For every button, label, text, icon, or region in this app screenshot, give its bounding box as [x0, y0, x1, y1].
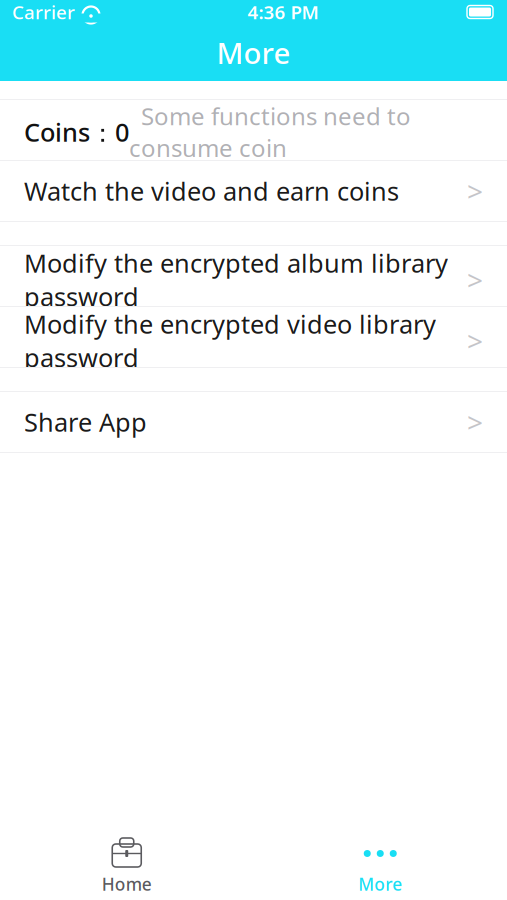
button[interactable]: Watch the video and earn coins [0, 161, 507, 222]
staticText: 4:36 PM [247, 0, 318, 24]
staticText: More [216, 33, 290, 72]
staticText: Modify the encrypted video library passw… [24, 307, 436, 374]
staticText: Watch the video and earn coins [24, 174, 399, 208]
staticText: Coins： [24, 115, 115, 149]
staticText: > [467, 403, 483, 441]
staticText: Modify the encrypted album library passw… [24, 246, 448, 313]
button[interactable]: More [253, 828, 507, 900]
staticText: > [467, 261, 483, 298]
staticText: > [467, 172, 483, 210]
staticText: Some functions need to consume coin [129, 100, 411, 164]
staticText: More [358, 872, 402, 895]
button[interactable]: Modify the encrypted album library passw… [0, 246, 507, 307]
staticText: Share App [24, 405, 147, 439]
staticText: 0 [115, 115, 129, 149]
button[interactable]: Modify the encrypted video library passw… [0, 307, 507, 368]
staticText: > [467, 322, 483, 359]
staticText: Carrier [12, 0, 75, 24]
button[interactable]: Share App [0, 392, 507, 453]
staticText: Home [102, 872, 152, 895]
button[interactable]: Home [0, 828, 253, 900]
